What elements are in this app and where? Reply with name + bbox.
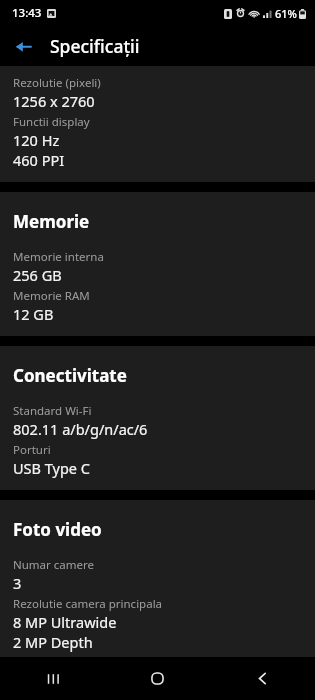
staticText: Porturi — [13, 442, 51, 458]
button[interactable]: Foto video — [0, 500, 315, 657]
staticText: 256 GB — [13, 265, 62, 285]
staticText: Rezolutie camera principala — [13, 596, 163, 612]
staticText: Memorie — [13, 210, 90, 233]
staticText: USB Type C — [13, 458, 90, 478]
staticText: Functii display — [13, 114, 90, 130]
staticText: Numar camere — [13, 557, 95, 573]
staticText: Specificații — [50, 34, 140, 58]
staticText: 3 — [13, 573, 22, 593]
staticText: Conectivitate — [13, 364, 127, 387]
staticText: Memorie RAM — [13, 288, 90, 304]
staticText: 2 MP Depth — [13, 632, 93, 652]
staticText: Standard Wi-Fi — [13, 403, 92, 419]
staticText: 120 Hz — [13, 130, 60, 150]
staticText: 460 PPI — [13, 150, 65, 170]
button[interactable]: Home — [105, 657, 210, 700]
staticText: 1256 x 2760 — [13, 91, 95, 111]
button[interactable]: Recents — [0, 657, 105, 700]
button[interactable]: Back — [210, 657, 315, 700]
staticText: Rezolutie (pixeli) — [13, 75, 101, 91]
staticText: 8 MP Ultrawide — [13, 612, 117, 632]
button[interactable]: Memorie — [0, 192, 315, 336]
staticText: 61% — [275, 6, 297, 21]
button[interactable]: Back — [6, 29, 40, 63]
staticText: Foto video — [13, 518, 102, 541]
button[interactable]: Conectivitate — [0, 346, 315, 490]
button[interactable]: Rezolutie (pixeli) — [0, 66, 315, 182]
staticText: 12 GB — [13, 304, 54, 324]
staticText: Memorie interna — [13, 249, 104, 265]
staticText: 13:43 — [12, 5, 42, 21]
staticText: 802.11 a/b/g/n/ac/6 — [13, 419, 148, 439]
